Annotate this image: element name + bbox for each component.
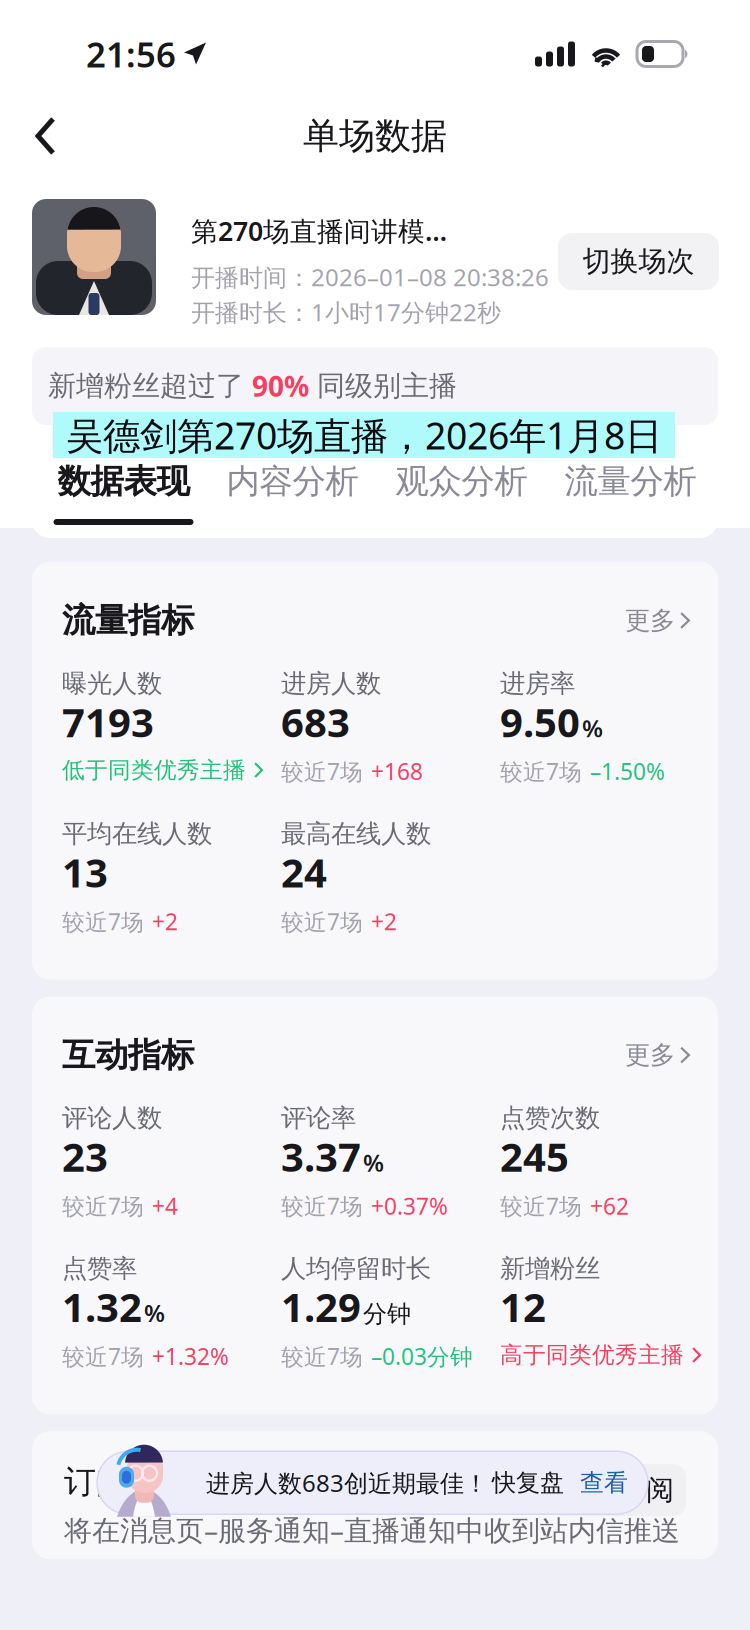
staticText: 较近7场 [62, 906, 144, 937]
staticText: 1.29 [281, 1280, 361, 1333]
staticText: 切换场次 [582, 244, 694, 279]
staticText: 更多 [625, 605, 675, 636]
staticText: 较近7场 [281, 756, 363, 786]
staticText: 最高在线人数 [281, 818, 431, 849]
staticText: –1.50% [590, 756, 665, 786]
button[interactable]: 内容分析 [208, 425, 377, 525]
staticText: 流量指标 [62, 600, 194, 641]
staticText: 12 [500, 1280, 546, 1333]
staticText: 互动指标 [62, 1035, 194, 1075]
staticText: 开播时间：2026–01–08 20:38:26 [191, 261, 549, 293]
staticText: 流量分析 [564, 461, 696, 502]
staticText: 245 [500, 1130, 569, 1183]
staticText: 评论人数 [62, 1103, 162, 1134]
staticText: 评论率 [281, 1103, 356, 1134]
staticText: +4 [152, 1191, 178, 1221]
button[interactable]: 流量分析 [546, 425, 715, 525]
staticText: 点赞率 [62, 1253, 137, 1284]
staticText: +0.37% [371, 1191, 448, 1221]
staticText: 立即订阅 [562, 1473, 674, 1507]
staticText: 7193 [62, 695, 154, 748]
staticText: 进房率 [500, 668, 575, 699]
staticText: 数据表现 [57, 461, 189, 502]
staticText: 平均在线人数 [62, 818, 212, 849]
staticText: 21:56 [86, 31, 176, 77]
staticText: 订阅开播提醒 [64, 1462, 256, 1501]
staticText: 同级别主播 [309, 369, 457, 403]
staticText: 9.50 [500, 695, 580, 748]
staticText: 分钟 [363, 1299, 411, 1329]
staticText: –0.03分钟 [371, 1341, 473, 1371]
staticText: 单场数据 [303, 114, 447, 158]
staticText: 更多 [625, 1039, 675, 1071]
staticText: +2 [152, 906, 178, 937]
staticText: 观众分析 [395, 461, 527, 502]
staticText: 683 [281, 695, 350, 748]
button[interactable]: Back [0, 98, 91, 174]
staticText: 24 [281, 845, 327, 898]
button[interactable]: 更多 [625, 1039, 690, 1071]
staticText: 点赞次数 [500, 1103, 600, 1134]
button[interactable]: 更多 [625, 605, 690, 636]
staticText: 第270场直播间讲模… [191, 213, 447, 248]
staticText: 新增粉丝 [500, 1253, 600, 1284]
staticText: 查看 [580, 1468, 628, 1497]
staticText: 较近7场 [281, 1191, 363, 1221]
staticText: 吴德剑第270场直播，2026年1月8日 [66, 410, 662, 460]
staticText: 较近7场 [500, 756, 582, 786]
staticText: 较近7场 [500, 1191, 582, 1221]
staticText: 低于同类优秀主播 [62, 756, 246, 784]
staticText: 进房人数683创近期最佳！ [206, 1467, 488, 1499]
staticText: +62 [590, 1191, 629, 1221]
button[interactable]: 观众分析 [377, 425, 546, 525]
button[interactable]: 查看 [570, 1462, 638, 1503]
button[interactable]: 切换场次 [558, 233, 719, 290]
staticText: +1.32% [152, 1341, 229, 1371]
staticText: 13 [62, 845, 108, 898]
staticText: 开播时长：1小时17分钟22秒 [191, 296, 501, 328]
staticText: % [582, 712, 603, 744]
staticText: 较近7场 [281, 906, 363, 937]
staticText: 内容分析 [226, 461, 358, 502]
staticText: 曝光人数 [62, 668, 162, 699]
staticText: 人均停留时长 [281, 1253, 431, 1284]
button[interactable]: 数据表现 [39, 425, 208, 525]
staticText: % [363, 1146, 384, 1178]
staticText: 新增粉丝超过了 [48, 369, 252, 403]
staticText: 进房人数 [281, 668, 381, 699]
staticText: 23 [62, 1130, 108, 1183]
button[interactable]: 立即订阅 [550, 1464, 686, 1516]
staticText: % [144, 1297, 165, 1329]
staticText: +168 [371, 756, 423, 786]
staticText: 较近7场 [62, 1191, 144, 1221]
staticText: 将在消息页–服务通知–直播通知中收到站内信推送 [64, 1511, 680, 1548]
staticText: 较近7场 [281, 1341, 363, 1371]
staticText: 高于同类优秀主播 [500, 1341, 684, 1369]
staticText: 较近7场 [62, 1341, 144, 1371]
staticText: 1.32 [62, 1280, 142, 1333]
staticText: 快复盘 [492, 1468, 564, 1497]
staticText: 3.37 [281, 1130, 361, 1183]
staticText: +2 [371, 906, 397, 937]
staticText: 90% [252, 367, 309, 405]
